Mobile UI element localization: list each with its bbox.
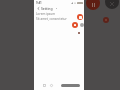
- button[interactable]: Home: [50, 84, 53, 87]
- button[interactable]: Search: [61, 84, 80, 87]
- button[interactable]: Back: [36, 6, 41, 11]
- staticText: Sit amet, consectetur: [36, 17, 67, 21]
- button[interactable]: Record indicator: [77, 14, 83, 20]
- staticText: 9:41: [36, 1, 42, 5]
- staticText: Setting: [41, 6, 53, 11]
- staticText: Lorem ipsum: [36, 12, 56, 16]
- button[interactable]: Recents: [43, 84, 46, 87]
- button[interactable]: Camera: [103, 17, 109, 23]
- button[interactable]: Record indicator: [72, 22, 78, 28]
- button[interactable]: Pause recording: [86, 0, 100, 10]
- button[interactable]: Stop recording: [105, 0, 119, 9]
